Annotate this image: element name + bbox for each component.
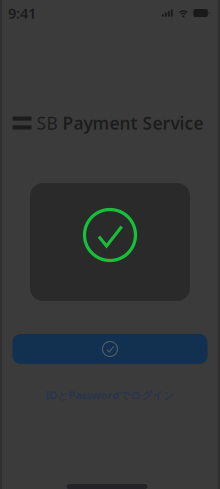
- staticText: SB: [31, 111, 62, 134]
- staticText: Payment Service: [62, 111, 203, 134]
- staticText: 9:41: [8, 3, 36, 23]
- button[interactable]: IDとPasswordでログイン: [45, 388, 174, 402]
- button[interactable]: Login with Face ID: [12, 334, 207, 364]
- staticText: IDとPasswordでログイン: [45, 388, 174, 402]
